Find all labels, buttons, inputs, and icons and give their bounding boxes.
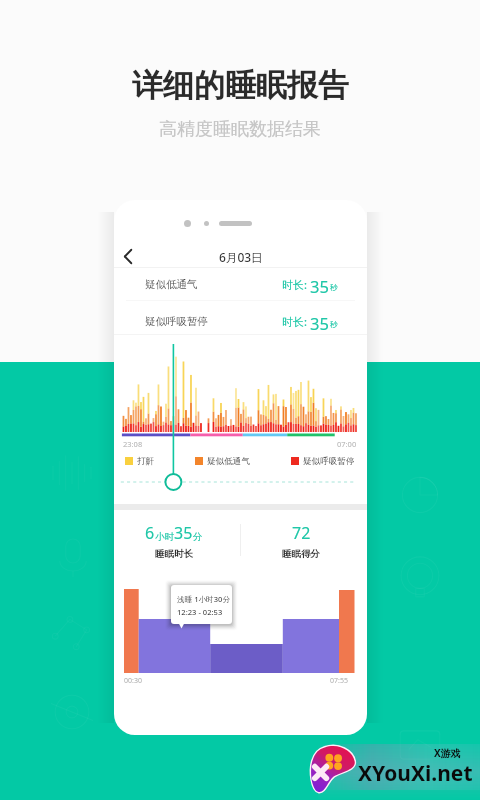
staticText: 打鼾 xyxy=(137,456,155,466)
button[interactable]: 疑似呼吸暂停 xyxy=(114,312,367,330)
staticText: 秒 xyxy=(330,283,338,292)
staticText: 睡眠得分 xyxy=(282,548,320,560)
staticText: 35 xyxy=(310,312,329,330)
staticText: 分 xyxy=(193,531,203,543)
staticText: 疑似低通气 xyxy=(145,278,198,291)
staticText: 秒 xyxy=(330,320,338,329)
button[interactable]: Back xyxy=(116,245,139,268)
staticText: 35 xyxy=(174,522,193,544)
staticText: 时长: xyxy=(282,314,307,329)
staticText: 睡眠时长 xyxy=(155,548,193,560)
staticText: 浅睡 1小时30分 xyxy=(177,594,230,604)
staticText: 高精度睡眠数据结果 xyxy=(159,118,321,141)
staticText: 00:30 xyxy=(124,676,142,686)
staticText: 疑似呼吸暂停 xyxy=(303,456,355,466)
staticText: 6月03日 xyxy=(219,249,263,265)
staticText: 疑似呼吸暂停 xyxy=(145,315,208,328)
staticText: 23:08 xyxy=(123,439,143,449)
staticText: 详细的睡眠报告 xyxy=(132,66,349,105)
staticText: XYouXi.net xyxy=(358,759,473,788)
staticText: 07:55 xyxy=(330,676,348,686)
staticText: 72 xyxy=(292,522,311,544)
staticText: 时长: xyxy=(282,277,307,292)
staticText: 12:23 - 02:53 xyxy=(177,607,223,617)
staticText: X游戏 xyxy=(434,746,461,760)
button[interactable]: 疑似低通气 xyxy=(114,275,367,293)
staticText: 疑似低通气 xyxy=(207,456,250,466)
staticText: 07:00 xyxy=(337,439,357,449)
staticText: 35 xyxy=(310,275,329,293)
staticText: 6 xyxy=(145,522,155,544)
staticText: 小时 xyxy=(155,531,174,543)
